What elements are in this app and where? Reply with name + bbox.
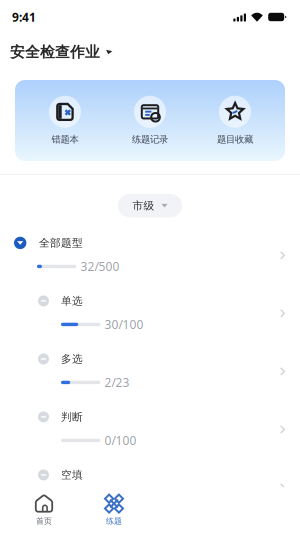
button[interactable]: 首页 (9, 488, 79, 532)
staticText: 30/100 (104, 316, 143, 332)
staticText: 市级 (132, 199, 154, 212)
staticText: 32/500 (80, 258, 119, 274)
button[interactable]: 市级 (118, 194, 182, 217)
button[interactable]: 空填 (0, 458, 300, 516)
staticText: 0/100 (104, 432, 136, 448)
button[interactable]: 单选 (0, 284, 300, 342)
staticText: 错题本 (51, 134, 78, 145)
staticText: 安全检查作业 (10, 43, 100, 61)
staticText: 空填 (61, 468, 83, 481)
staticText: 单选 (61, 294, 83, 307)
button[interactable]: 多选 (0, 342, 300, 400)
staticText: 首页 (36, 516, 52, 526)
staticText: 练题记录 (132, 134, 168, 145)
button[interactable]: 练题记录 (119, 96, 181, 145)
button[interactable]: 练题 (79, 488, 149, 532)
staticText: 0/50 (104, 490, 129, 506)
staticText: 多选 (61, 352, 83, 365)
staticText: 2/23 (104, 374, 129, 390)
staticText: 题目收藏 (217, 134, 253, 145)
button[interactable]: 全部题型 (0, 226, 300, 284)
staticText: 全部题型 (39, 236, 83, 249)
staticText: 练题 (106, 516, 122, 526)
button[interactable]: 判断 (0, 400, 300, 458)
staticText: 9:41 (12, 9, 36, 25)
staticText: 判断 (61, 410, 83, 423)
button[interactable]: 错题本 (34, 96, 96, 145)
button[interactable]: 题目收藏 (204, 96, 266, 145)
